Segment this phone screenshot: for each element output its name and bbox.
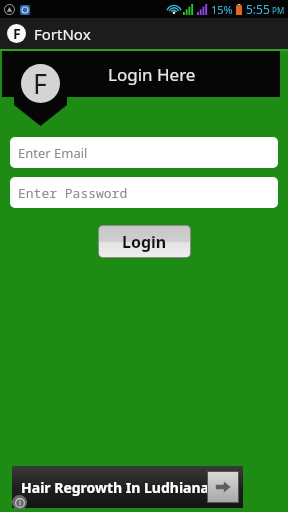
button[interactable]: Ad info xyxy=(12,495,27,510)
button[interactable]: F xyxy=(0,18,288,49)
button[interactable]: Open ad xyxy=(208,472,238,502)
button[interactable]: Enter Password xyxy=(10,177,278,208)
staticText: Login xyxy=(122,231,167,253)
button[interactable]: Login xyxy=(99,226,190,257)
staticText: Enter Password xyxy=(18,184,128,202)
staticText: PM xyxy=(270,5,285,16)
button[interactable]: Enter Email xyxy=(10,137,278,168)
staticText: FortNox xyxy=(34,24,91,44)
staticText: Hair Regrowth In Ludhiana xyxy=(21,478,209,497)
staticText: 5:55 xyxy=(246,1,270,17)
staticText: F xyxy=(13,24,21,43)
staticText: Login Here xyxy=(108,63,196,86)
staticText: Enter Email xyxy=(18,144,88,162)
staticText: F xyxy=(33,65,48,102)
button[interactable]: Hair Regrowth In Ludhiana xyxy=(12,466,243,508)
staticText: 15% xyxy=(211,2,233,17)
